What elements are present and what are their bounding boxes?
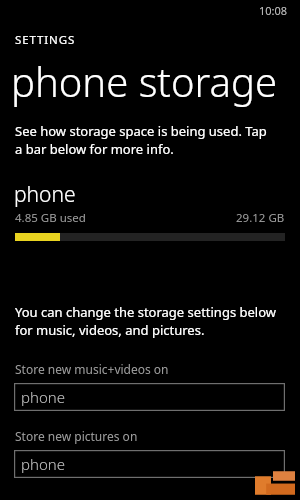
staticText: 29.12 GB <box>236 210 285 226</box>
other: Legit Reviews watermark <box>255 469 295 497</box>
staticText: phone <box>21 454 65 474</box>
staticText: Store new pictures on <box>15 428 138 444</box>
staticText: phone <box>21 387 65 407</box>
staticText: You can change the storage settings belo… <box>15 303 277 339</box>
button[interactable]: phone <box>0 178 300 243</box>
button[interactable]: phone <box>14 450 285 478</box>
staticText: 4.85 GB used <box>15 210 86 226</box>
staticText: phone <box>14 180 76 209</box>
staticText: Store new music+videos on <box>15 361 169 377</box>
button[interactable]: phone <box>14 383 285 411</box>
staticText: 10:08 <box>259 3 288 18</box>
staticText: See how storage space is being used. Tap… <box>15 122 267 158</box>
staticText: phone storage <box>11 54 277 108</box>
staticText: SETTINGS <box>15 32 76 48</box>
